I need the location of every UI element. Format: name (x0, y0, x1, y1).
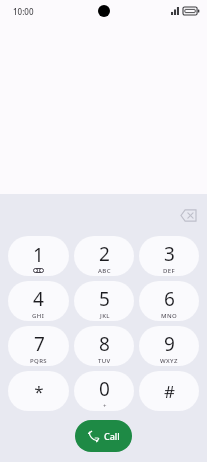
staticText: WXYZ (160, 357, 178, 365)
staticText: 5 (99, 286, 110, 312)
button[interactable]: 4 (8, 281, 69, 321)
staticText: 6 (164, 286, 175, 312)
staticText: 2 (99, 241, 110, 267)
staticText: GHI (32, 312, 45, 320)
button[interactable]: 3 (139, 236, 199, 276)
staticText: 10:00 (13, 6, 34, 17)
staticText: * (34, 380, 44, 403)
button[interactable]: 0 (74, 371, 134, 411)
staticText: 4 (33, 286, 44, 312)
staticText: 0 (99, 376, 110, 402)
staticText: JKL (100, 312, 110, 320)
staticText: Call (104, 430, 120, 442)
button[interactable]: 9 (139, 326, 199, 366)
staticText: DEF (163, 267, 176, 275)
staticText: # (164, 380, 175, 403)
button[interactable]: Call (75, 420, 132, 452)
button[interactable]: 7 (8, 326, 69, 366)
staticText: MNO (161, 312, 178, 320)
staticText: + (103, 402, 107, 410)
button[interactable]: 5 (74, 281, 134, 321)
staticText: TUV (98, 357, 111, 365)
button[interactable]: 2 (74, 236, 134, 276)
staticText: 3 (164, 241, 175, 267)
staticText: ABC (98, 267, 111, 275)
button[interactable]: * (8, 371, 69, 411)
button[interactable]: 6 (139, 281, 199, 321)
button[interactable]: 8 (74, 326, 134, 366)
button[interactable]: Backspace (175, 202, 201, 228)
staticText: 7 (34, 331, 45, 357)
staticText: 1 (33, 242, 44, 268)
button[interactable]: # (139, 371, 199, 411)
button[interactable]: 1 (8, 236, 69, 276)
staticText: 8 (99, 331, 110, 357)
staticText: PQRS (30, 357, 48, 365)
staticText: 9 (164, 331, 175, 357)
